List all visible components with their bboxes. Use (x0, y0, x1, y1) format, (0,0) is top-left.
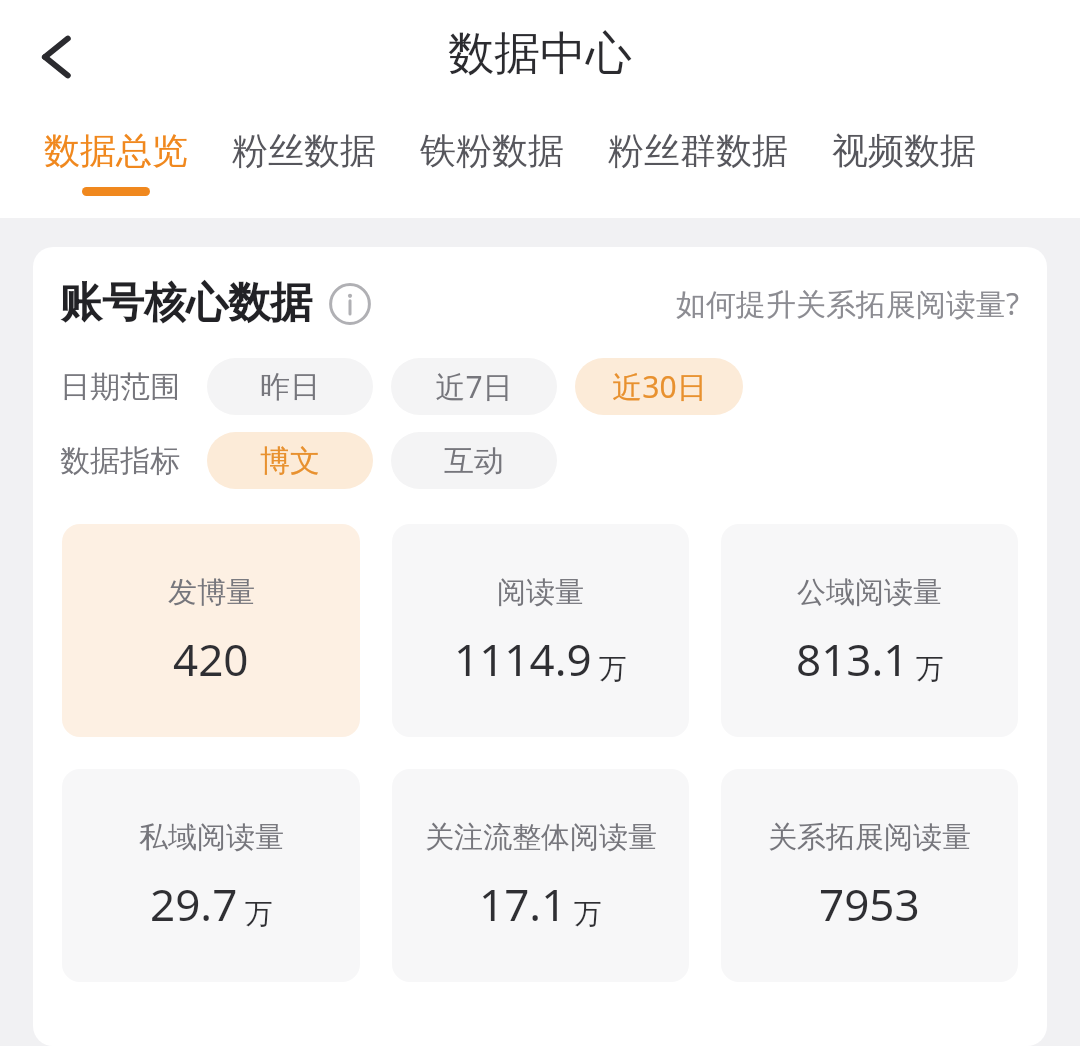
staticText: 近30日 (612, 366, 707, 407)
staticText: 813.1 (796, 629, 909, 689)
staticText: 发博量 (168, 574, 255, 611)
button[interactable]: 近7日 (391, 358, 557, 415)
staticText: 近7日 (435, 366, 513, 407)
staticText: 17.1 (479, 874, 567, 934)
staticText: 视频数据 (832, 128, 976, 173)
button[interactable]: 发博量 (62, 524, 360, 737)
button[interactable]: 近30日 (575, 358, 743, 415)
button[interactable]: 数据总览 (30, 128, 202, 196)
staticText: 数据中心 (448, 25, 632, 83)
button[interactable]: 铁粉数据 (406, 128, 578, 187)
staticText: 私域阅读量 (139, 819, 284, 856)
button[interactable]: 阅读量 (392, 524, 689, 737)
staticText: 420 (173, 629, 249, 689)
button[interactable]: 昨日 (207, 358, 373, 415)
staticText: 账号核心数据 (60, 277, 312, 330)
button[interactable]: 博文 (207, 432, 373, 489)
staticText: 铁粉数据 (420, 128, 564, 173)
button[interactable]: 互动 (391, 432, 557, 489)
button[interactable]: 关注流整体阅读量 (392, 769, 689, 982)
button[interactable]: 公域阅读量 (721, 524, 1018, 737)
staticText: 阅读量 (497, 574, 584, 611)
button[interactable]: 关系拓展阅读量 (721, 769, 1018, 982)
staticText: 昨日 (260, 368, 320, 406)
button[interactable]: 粉丝数据 (218, 128, 390, 187)
staticText: 关注流整体阅读量 (425, 819, 657, 856)
staticText: 粉丝群数据 (608, 128, 788, 173)
staticText: 数据指标 (60, 442, 180, 480)
staticText: 博文 (260, 442, 320, 480)
button[interactable]: 如何提升关系拓展阅读量? (676, 283, 1020, 324)
staticText: 万 (574, 896, 602, 931)
staticText: 如何提升关系拓展阅读量? (676, 283, 1020, 324)
staticText: 29.7 (150, 874, 238, 934)
button[interactable]: 视频数据 (818, 128, 990, 187)
staticText: 7953 (819, 874, 920, 934)
button[interactable]: Back (18, 22, 88, 92)
button[interactable]: Info (326, 280, 374, 328)
staticText: 数据总览 (44, 128, 188, 173)
staticText: 万 (916, 651, 944, 686)
staticText: 1114.9 (454, 629, 592, 689)
button[interactable]: 私域阅读量 (62, 769, 360, 982)
staticText: 公域阅读量 (797, 574, 942, 611)
staticText: 关系拓展阅读量 (768, 819, 971, 856)
button[interactable]: 粉丝群数据 (594, 128, 802, 187)
staticText: 互动 (444, 442, 504, 480)
staticText: 粉丝数据 (232, 128, 376, 173)
staticText: 万 (599, 651, 627, 686)
staticText: 万 (245, 896, 273, 931)
staticText: 日期范围 (60, 368, 180, 406)
